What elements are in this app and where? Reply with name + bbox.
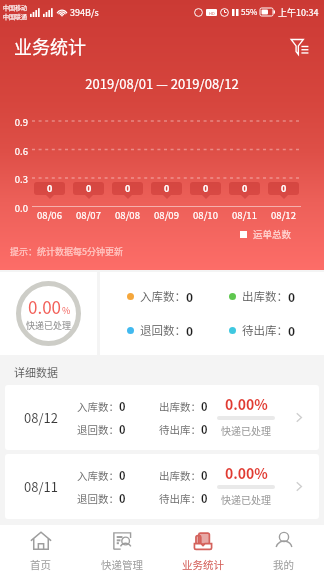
staticText: 出库数： bbox=[159, 399, 201, 414]
staticText: 0.00% bbox=[225, 463, 268, 483]
staticText: 0 bbox=[201, 490, 208, 506]
staticText: 业务统计 bbox=[14, 33, 86, 59]
staticText: 08/12 bbox=[264, 208, 303, 222]
staticText: 0 bbox=[186, 288, 194, 305]
staticText: 0 bbox=[86, 182, 92, 195]
button[interactable]: 我的 bbox=[243, 525, 324, 576]
staticText: 快递已处理 bbox=[26, 319, 72, 332]
staticText: 0 bbox=[281, 182, 287, 195]
staticText: 中国移动 bbox=[3, 3, 28, 12]
staticText: 退回数： bbox=[77, 422, 119, 437]
staticText: 入库数： bbox=[77, 399, 119, 414]
staticText: 0 bbox=[119, 421, 126, 437]
staticText: 入库数： bbox=[77, 468, 119, 483]
staticText: 待出库： bbox=[159, 422, 201, 437]
button[interactable]: 业务统计 bbox=[162, 525, 243, 576]
staticText: 08/11 bbox=[225, 208, 264, 222]
staticText: 详细数据 bbox=[14, 364, 58, 380]
staticText: 0 bbox=[203, 182, 209, 195]
staticText: 0 bbox=[201, 467, 208, 483]
staticText: 出库数： bbox=[159, 468, 201, 483]
staticText: 0.0 bbox=[0, 201, 28, 215]
staticText: 0 bbox=[288, 322, 296, 339]
staticText: 0 bbox=[119, 467, 126, 483]
staticText: 快递已处理 bbox=[221, 423, 271, 437]
staticText: 08/07 bbox=[69, 208, 108, 222]
staticText: 上午10:34 bbox=[278, 6, 319, 19]
button[interactable]: 08/11 bbox=[5, 454, 319, 519]
staticText: 394B/s bbox=[70, 6, 99, 19]
staticText: 0.6 bbox=[0, 144, 28, 158]
staticText: 0 bbox=[201, 398, 208, 414]
staticText: 08/06 bbox=[30, 208, 69, 222]
staticText: 业务统计 bbox=[182, 557, 224, 572]
staticText: 首页 bbox=[30, 557, 51, 572]
button[interactable]: Filter bbox=[284, 31, 314, 61]
staticText: 0 bbox=[288, 288, 296, 305]
staticText: 运单总数 bbox=[253, 227, 292, 241]
staticText: 快递管理 bbox=[101, 557, 143, 572]
staticText: 0 bbox=[119, 490, 126, 506]
staticText: 0 bbox=[119, 398, 126, 414]
staticText: 中国联通 bbox=[3, 12, 28, 21]
staticText: 0 bbox=[186, 322, 194, 339]
staticText: 退回数： bbox=[77, 491, 119, 506]
staticText: 0.00 bbox=[28, 294, 62, 319]
button[interactable]: 08/12 bbox=[5, 385, 319, 450]
staticText: 入库数： bbox=[140, 288, 186, 305]
button[interactable]: 快递管理 bbox=[81, 525, 162, 576]
staticText: 08/12 bbox=[24, 408, 58, 427]
staticText: 55% bbox=[241, 6, 258, 18]
staticText: 0 bbox=[125, 182, 131, 195]
staticText: 待出库： bbox=[159, 491, 201, 506]
staticText: 提示：统计数据每5分钟更新 bbox=[10, 245, 123, 258]
staticText: 0 bbox=[201, 421, 208, 437]
staticText: 0.9 bbox=[0, 115, 28, 129]
staticText: 0.3 bbox=[0, 172, 28, 186]
staticText: 退回数： bbox=[140, 322, 186, 339]
staticText: 08/08 bbox=[108, 208, 147, 222]
staticText: 待出库： bbox=[242, 322, 288, 339]
button[interactable]: 首页 bbox=[0, 525, 81, 576]
staticText: HD bbox=[209, 10, 215, 16]
staticText: 0 bbox=[47, 182, 53, 195]
staticText: 0 bbox=[164, 182, 170, 195]
staticText: 2019/08/01 — 2019/08/12 bbox=[0, 74, 324, 93]
staticText: 出库数： bbox=[242, 288, 288, 305]
staticText: 0.00% bbox=[225, 394, 268, 414]
staticText: 快递已处理 bbox=[221, 492, 271, 506]
staticText: 08/11 bbox=[24, 477, 58, 496]
staticText: % bbox=[62, 304, 71, 317]
staticText: 我的 bbox=[273, 557, 294, 572]
staticText: 0 bbox=[242, 182, 248, 195]
staticText: 08/09 bbox=[147, 208, 186, 222]
staticText: 08/10 bbox=[186, 208, 225, 222]
